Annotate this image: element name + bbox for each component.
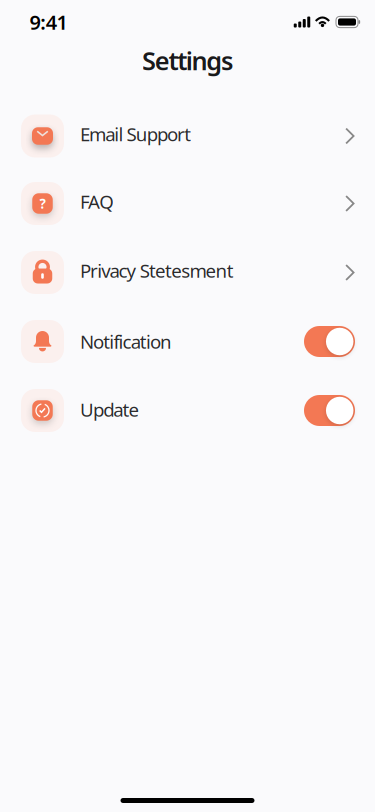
staticText: ? (39, 195, 45, 212)
staticText: Update (80, 397, 139, 422)
button[interactable]: Email Support (0, 103, 375, 169)
staticText: Settings (142, 44, 233, 77)
staticText: Notification (80, 329, 172, 354)
staticText: Privacy Stetesment (80, 258, 234, 283)
button[interactable]: ? (0, 169, 375, 238)
button[interactable]: Update (304, 395, 355, 426)
staticText: 9:41 (30, 9, 67, 35)
staticText: FAQ (80, 189, 114, 214)
button[interactable]: Privacy Stetesment (0, 238, 375, 307)
button[interactable]: Notification (304, 326, 355, 357)
staticText: Email Support (80, 122, 191, 146)
